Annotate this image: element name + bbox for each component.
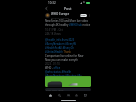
button[interactable]: Post your reply xyxy=(45,88,91,91)
staticText: @health_info #serv2023 #EveryNewborn #Ev… xyxy=(45,38,84,76)
button[interactable]: Notifications xyxy=(74,93,79,98)
button[interactable]: Attached photo xyxy=(45,76,91,87)
button[interactable]: Search xyxy=(57,93,62,98)
button[interactable]: Messages xyxy=(83,93,88,98)
button[interactable]: Profile picture xyxy=(45,13,50,18)
staticText: 10:32 xyxy=(48,1,56,5)
staticText: Post your reply xyxy=(46,88,64,91)
staticText: WHO Europe xyxy=(51,12,70,16)
button[interactable]: Communities xyxy=(66,93,71,98)
staticText: Follow xyxy=(80,14,87,17)
staticText: 10:31 PM - Oct 246.1K Views xyxy=(45,28,63,36)
staticText: Post xyxy=(64,6,72,11)
button[interactable]: Back xyxy=(44,6,49,11)
staticText: New Series 100 and More live video throu… xyxy=(45,19,91,27)
staticText: @WHO_Europe xyxy=(51,16,69,19)
button[interactable]: Home xyxy=(48,93,53,98)
button[interactable]: More options xyxy=(88,14,91,17)
button[interactable]: Follow xyxy=(80,14,87,17)
